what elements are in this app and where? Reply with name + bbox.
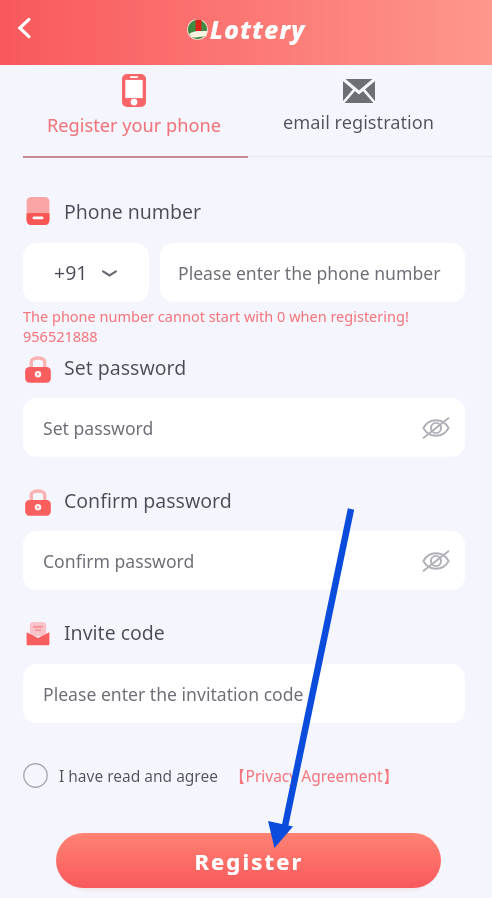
button[interactable]: Please enter the invitation code [23,664,465,723]
staticText: +91 [54,259,88,286]
staticText: Please enter the phone number [178,261,441,285]
button[interactable]: Confirm password [23,531,465,590]
button[interactable]: Show password [422,547,450,575]
staticText: 956521888 [23,326,98,346]
staticText: Register your phone [47,113,221,138]
staticText: 【Privacy Agreement】 [230,765,399,786]
staticText: The phone number cannot start with 0 whe… [23,306,409,326]
button[interactable]: Register [56,833,441,888]
staticText: Register [194,846,304,876]
button[interactable]: Set password [23,398,465,457]
button[interactable]: Show password [422,414,450,442]
staticText: I have read and agree [59,765,218,786]
button[interactable]: I have read and agree [23,763,399,788]
button[interactable]: Please enter the phone number [160,243,465,302]
button[interactable]: email registration [246,65,471,158]
staticText: Invite code [64,619,165,646]
staticText: email registration [283,110,434,135]
staticText: Set password [43,416,154,440]
button[interactable]: Register your phone [22,65,246,158]
staticText: Set password [64,354,187,381]
button[interactable]: +91 [23,243,149,302]
staticText: Please enter the invitation code [43,682,304,706]
staticText: Phone number [64,198,202,225]
staticText: Confirm password [43,549,195,573]
button[interactable]: Back [4,8,44,48]
staticText: Confirm password [64,487,232,514]
staticText: Lottery [210,13,306,46]
